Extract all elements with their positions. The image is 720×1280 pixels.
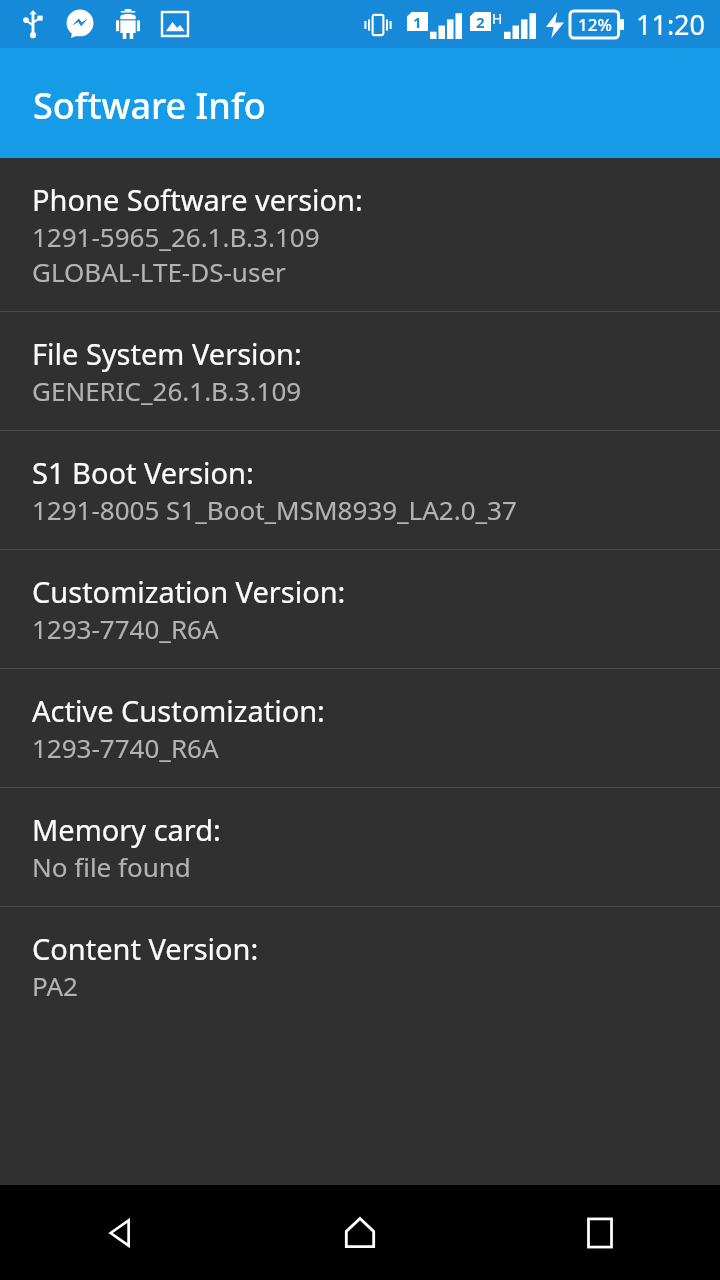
button[interactable]: Customization Version:: [0, 550, 720, 668]
button[interactable]: Back: [0, 1185, 240, 1280]
button[interactable]: Home: [240, 1185, 480, 1280]
button[interactable]: Phone Software version:: [0, 158, 720, 311]
staticText: H: [492, 9, 503, 28]
staticText: 12%: [578, 13, 612, 36]
staticText: 11:20: [636, 6, 706, 43]
staticText: GLOBAL-LTE-DS-user: [32, 254, 286, 289]
staticText: No file found: [32, 849, 191, 884]
staticText: 1293-7740_R6A: [32, 730, 219, 765]
staticText: PA2: [32, 968, 78, 1003]
staticText: Customization Version:: [32, 572, 346, 611]
staticText: 1: [413, 12, 422, 31]
staticText: 1291-8005 S1_Boot_MSM8939_LA2.0_37: [32, 492, 517, 527]
button[interactable]: S1 Boot Version:: [0, 431, 720, 549]
staticText: S1 Boot Version:: [32, 453, 254, 492]
button[interactable]: Content Version:: [0, 907, 720, 1025]
staticText: Memory card:: [32, 810, 221, 849]
staticText: GENERIC_26.1.B.3.109: [32, 373, 302, 408]
staticText: Active Customization:: [32, 691, 325, 730]
button[interactable]: Active Customization:: [0, 669, 720, 787]
staticText: 1291-5965_26.1.B.3.109: [32, 219, 320, 254]
staticText: 1293-7740_R6A: [32, 611, 219, 646]
staticText: Software Info: [33, 81, 266, 130]
staticText: Content Version:: [32, 929, 259, 968]
staticText: 2: [476, 12, 485, 31]
staticText: File System Version:: [32, 334, 302, 373]
button[interactable]: File System Version:: [0, 312, 720, 430]
staticText: Phone Software version:: [32, 180, 363, 219]
button[interactable]: Memory card:: [0, 788, 720, 906]
button[interactable]: Recent apps: [480, 1185, 720, 1280]
